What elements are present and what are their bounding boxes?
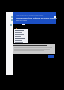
staticText: Advancing the Future of Work Today <box>16 17 57 20</box>
staticText: with our team <box>16 19 28 21</box>
button[interactable] <box>6 12 13 75</box>
staticText: THE LEADING PLATFORM FOR WORK <box>16 14 44 16</box>
button[interactable] <box>14 29 28 43</box>
button[interactable] <box>13 12 56 24</box>
